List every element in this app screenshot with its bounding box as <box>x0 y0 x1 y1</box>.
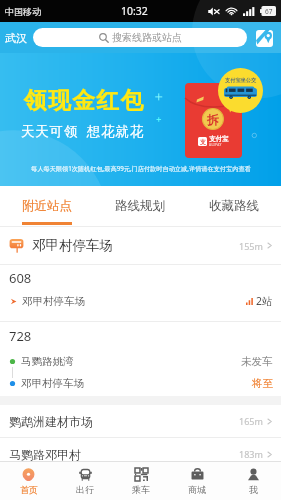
staticText: 67 <box>265 7 273 16</box>
button[interactable]: 鹦鹉洲建材市场 <box>0 405 281 437</box>
button[interactable]: Map <box>253 27 275 49</box>
button[interactable]: 608 <box>0 265 281 321</box>
button[interactable]: 我 <box>225 462 281 500</box>
staticText: 马鹦路邓甲村 <box>9 447 81 462</box>
button[interactable]: 728 <box>0 322 281 396</box>
staticText: 2站 <box>256 294 273 308</box>
staticText: 邓甲村停车场 <box>22 295 85 308</box>
staticText: 附近站点 <box>22 198 72 214</box>
staticText: 首页 <box>20 484 38 495</box>
staticText: 拆 <box>207 112 219 127</box>
staticText: 183m <box>239 448 263 460</box>
staticText: 未发车 <box>241 355 273 368</box>
staticText: 鹦鹉洲建材市场 <box>9 414 93 429</box>
staticText: 路线规划 <box>115 198 165 214</box>
staticText: 支付宝 <box>209 135 229 143</box>
button[interactable]: 附近站点 <box>0 186 93 226</box>
staticText: 出行 <box>76 484 94 495</box>
staticText: 10:32 <box>121 4 148 18</box>
staticText: 将至 <box>252 377 273 390</box>
staticText: 155m <box>239 240 263 252</box>
staticText: 马鹦路姚湾 <box>21 355 74 368</box>
button[interactable]: 乘车 <box>113 462 169 500</box>
staticText: 支 <box>200 138 206 146</box>
staticText: 邓甲村停车场 <box>21 377 84 390</box>
staticText: 我 <box>249 484 258 495</box>
button[interactable]: 路线规划 <box>93 186 187 226</box>
staticText: 领现金红包 <box>24 86 145 114</box>
staticText: 搜索线路或站点 <box>112 31 182 44</box>
staticText: 武汉 <box>5 31 27 45</box>
staticText: ALIPAY <box>209 143 222 147</box>
staticText: 商城 <box>188 484 206 495</box>
button[interactable]: 出行 <box>57 462 113 500</box>
staticText: 乘车 <box>132 484 150 495</box>
staticText: 收藏路线 <box>209 198 259 214</box>
button[interactable]: 搜索线路或站点 <box>33 28 247 47</box>
button[interactable]: 首页 <box>0 462 57 500</box>
button[interactable]: 邓甲村停车场 <box>0 227 281 264</box>
staticText: 每人每天限领1次随机红包,最高99元,门店付款时自动立减,详情请在支付宝内查看 <box>31 164 251 172</box>
button[interactable]: 武汉 <box>4 28 28 48</box>
staticText: 支付宝坐公交 <box>225 77 257 84</box>
button[interactable]: 马鹦路邓甲村 <box>0 438 281 470</box>
staticText: 天天可领 想花就花 <box>21 122 145 140</box>
button[interactable]: 商城 <box>169 462 225 500</box>
staticText: 165m <box>239 415 263 427</box>
staticText: 728 <box>9 327 32 345</box>
staticText: 中国移动 <box>5 6 41 17</box>
button[interactable]: 收藏路线 <box>187 186 281 226</box>
staticText: 608 <box>9 269 32 287</box>
staticText: 邓甲村停车场 <box>32 237 113 254</box>
